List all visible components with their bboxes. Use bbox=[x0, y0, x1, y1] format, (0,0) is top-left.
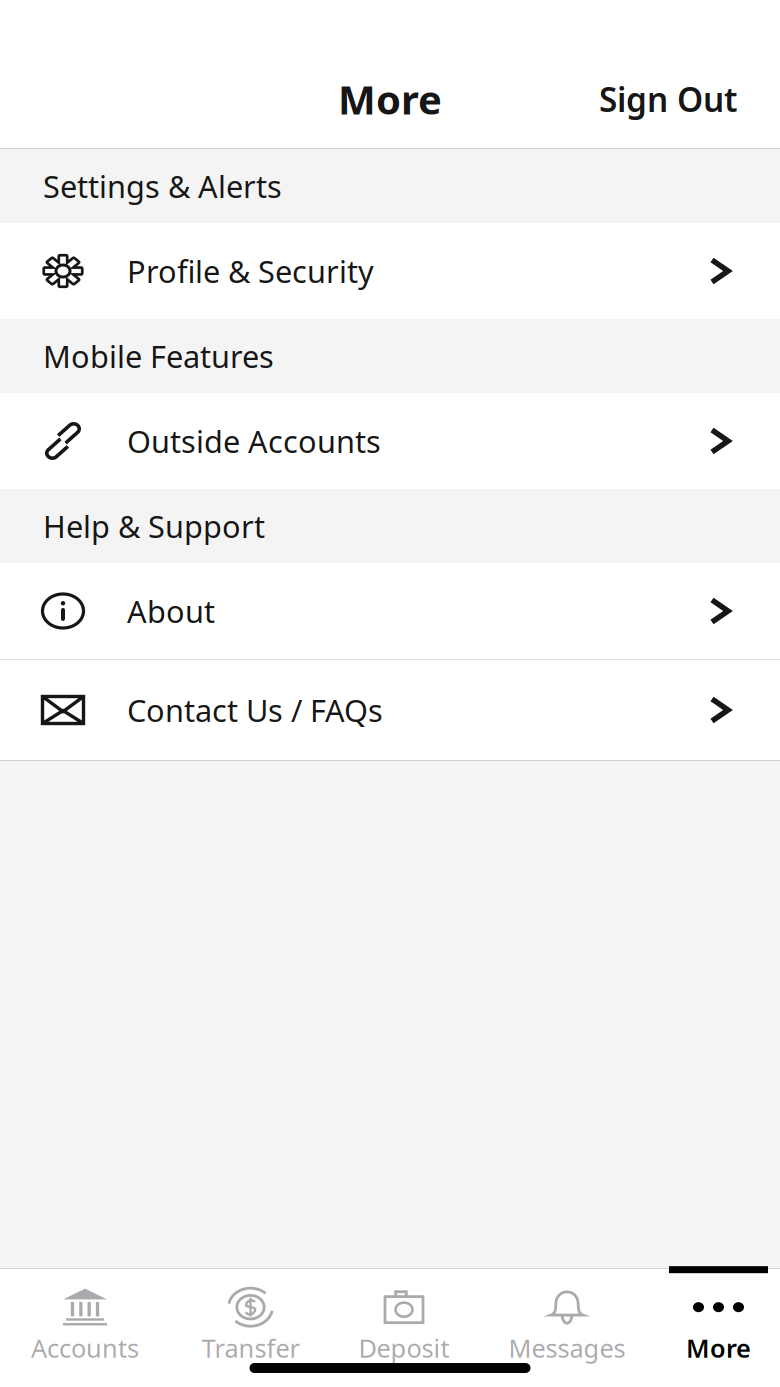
staticText: Outside Accounts bbox=[127, 421, 381, 461]
button[interactable]: Messages bbox=[477, 1269, 657, 1362]
staticText: Help & Support bbox=[43, 506, 265, 546]
staticText: Profile & Security bbox=[127, 251, 374, 291]
button[interactable]: Contact Us / FAQs bbox=[0, 660, 780, 760]
staticText: More bbox=[686, 1331, 751, 1365]
staticText: Deposit bbox=[358, 1331, 449, 1365]
button[interactable]: Deposit bbox=[331, 1269, 477, 1362]
button[interactable]: Accounts bbox=[0, 1269, 170, 1362]
button[interactable]: More bbox=[657, 1269, 780, 1362]
staticText: Mobile Features bbox=[43, 336, 274, 376]
staticText: Accounts bbox=[31, 1331, 139, 1365]
button[interactable]: Sign Out bbox=[599, 67, 780, 131]
staticText: Contact Us / FAQs bbox=[127, 690, 383, 730]
staticText: Sign Out bbox=[599, 77, 738, 121]
staticText: Transfer bbox=[201, 1331, 299, 1365]
button[interactable]: Transfer bbox=[170, 1269, 331, 1362]
staticText: Settings & Alerts bbox=[43, 166, 282, 206]
staticText: Messages bbox=[508, 1331, 625, 1365]
staticText: About bbox=[127, 591, 215, 631]
button[interactable]: Outside Accounts bbox=[0, 393, 780, 489]
button[interactable]: About bbox=[0, 563, 780, 659]
button[interactable]: Profile & Security bbox=[0, 223, 780, 319]
staticText: More bbox=[338, 72, 442, 125]
